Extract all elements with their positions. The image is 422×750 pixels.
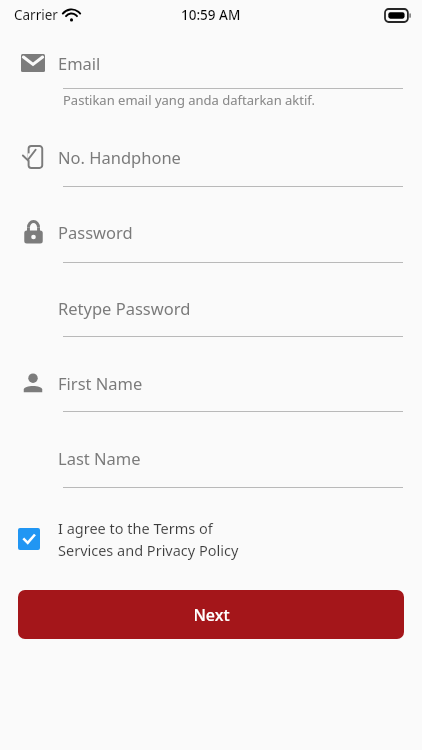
staticText: No. Handphone (58, 146, 181, 168)
staticText: Password (58, 221, 133, 243)
button[interactable]: Email (18, 48, 48, 78)
button[interactable]: I agree to the Terms of (18, 518, 404, 560)
staticText: Retype Password (58, 297, 191, 319)
button[interactable]: Email (58, 48, 404, 78)
staticText: Next (193, 604, 230, 626)
button[interactable]: No. Handphone (58, 142, 404, 172)
button[interactable]: First Name (58, 368, 404, 398)
staticText: Services and Privacy Policy (58, 540, 239, 560)
button[interactable]: Next (18, 590, 404, 639)
button[interactable]: Last Name (58, 443, 404, 473)
staticText: Carrier (14, 6, 58, 24)
button[interactable]: Password (58, 217, 404, 247)
button[interactable]: Password (18, 217, 48, 247)
staticText: First Name (58, 372, 143, 394)
staticText: Pastikan email yang anda daftarkan aktif… (63, 91, 316, 109)
staticText: 10:59 AM (181, 6, 241, 24)
button[interactable]: Phone number (18, 142, 48, 172)
button[interactable]: Retype Password (58, 293, 404, 323)
button[interactable]: First name (18, 368, 48, 398)
staticText: I agree to the Terms of (58, 518, 213, 538)
staticText: Last Name (58, 447, 141, 469)
staticText: Email (58, 52, 101, 74)
